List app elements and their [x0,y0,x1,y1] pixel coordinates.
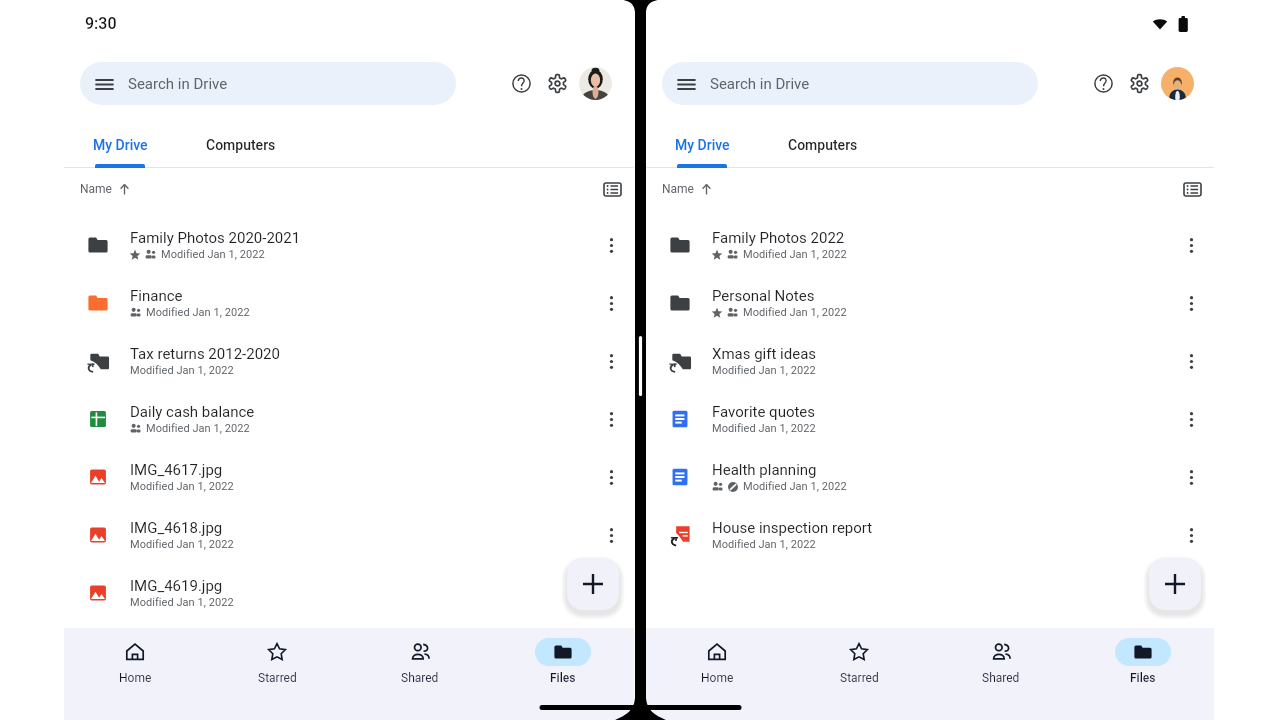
button[interactable]: Xmas gift ideas [646,332,1214,390]
staticText: Shared [401,671,439,685]
button[interactable]: IMG_4618.jpg [64,506,634,564]
button[interactable]: Shared [930,638,1072,710]
button[interactable]: Family Photos 2020-2021 [64,216,634,274]
staticText: Search in Drive [128,75,228,93]
button[interactable]: Files [491,638,634,710]
staticText: Daily cash balance [130,403,255,421]
button[interactable]: Create new [1149,558,1201,610]
staticText: House inspection report [712,519,873,537]
button[interactable]: House inspection report [646,506,1214,564]
button[interactable]: More options [1173,401,1209,437]
staticText: Modified Jan 1, 2022 [743,248,847,261]
staticText: Xmas gift ideas [712,345,817,363]
staticText: Home [119,671,152,685]
staticText: Modified Jan 1, 2022 [161,248,265,261]
staticText: Computers [788,137,858,153]
button[interactable]: More options [593,517,629,553]
button[interactable]: Settings [537,63,577,103]
staticText: My Drive [675,137,730,153]
button[interactable]: Help [1083,63,1123,103]
button[interactable]: Name [80,182,131,196]
staticText: My Drive [93,137,148,153]
button[interactable]: My Drive [667,118,737,172]
staticText: IMG_4617.jpg [130,461,223,479]
button[interactable]: Personal Notes [646,274,1214,332]
button[interactable]: More options [1173,517,1209,553]
staticText: Health planning [712,461,817,479]
staticText: Modified Jan 1, 2022 [146,422,250,435]
staticText: Modified Jan 1, 2022 [743,480,847,493]
button[interactable]: IMG_4619.jpg [64,564,634,622]
button[interactable]: Starred [788,638,930,710]
button[interactable]: My Drive [85,118,155,172]
staticText: Tax returns 2012-2020 [130,345,280,363]
button[interactable]: Open navigation drawer [80,62,456,105]
button[interactable]: Computers [780,118,866,172]
staticText: Modified Jan 1, 2022 [130,596,234,609]
button[interactable]: Health planning [646,448,1214,506]
staticText: Personal Notes [712,287,815,305]
staticText: Favorite quotes [712,403,816,421]
button[interactable]: Create new [567,558,619,610]
button[interactable]: Account [571,59,619,107]
staticText: Modified Jan 1, 2022 [130,538,234,551]
button[interactable]: More options [593,575,629,611]
staticText: Starred [258,671,297,685]
button[interactable]: Starred [206,638,348,710]
button[interactable]: More options [593,227,629,263]
button[interactable]: Shared [348,638,491,710]
button[interactable]: More options [593,459,629,495]
button[interactable]: Files [1072,638,1214,710]
staticText: Home [701,671,734,685]
staticText: Search in Drive [710,75,810,93]
staticText: Name [662,182,694,196]
button[interactable]: IMG_4617.jpg [64,448,634,506]
staticText: Modified Jan 1, 2022 [130,480,234,493]
button[interactable]: Family Photos 2022 [646,216,1214,274]
staticText: Modified Jan 1, 2022 [146,306,250,319]
button[interactable]: Favorite quotes [646,390,1214,448]
button[interactable]: More options [593,343,629,379]
button[interactable]: More options [1173,227,1209,263]
staticText: Modified Jan 1, 2022 [712,538,816,551]
staticText: Starred [840,671,879,685]
button[interactable]: More options [593,285,629,321]
button[interactable]: Tax returns 2012-2020 [64,332,634,390]
staticText: Family Photos 2020-2021 [130,229,301,247]
staticText: Shared [982,671,1020,685]
staticText: Name [80,182,112,196]
button[interactable]: Daily cash balance [64,390,634,448]
button[interactable]: Account [1153,59,1201,107]
staticText: Finance [130,287,183,305]
button[interactable]: More options [1173,285,1209,321]
button[interactable]: Open navigation drawer [87,67,121,101]
button[interactable]: Finance [64,274,634,332]
button[interactable]: Name [662,182,713,196]
button[interactable]: Help [501,63,541,103]
button[interactable]: Settings [1119,63,1159,103]
staticText: Modified Jan 1, 2022 [712,422,816,435]
button[interactable]: Home [646,638,788,710]
staticText: Modified Jan 1, 2022 [712,364,816,377]
staticText: 9:30 [85,14,117,33]
button[interactable]: More options [1173,459,1209,495]
button[interactable]: Switch to grid view [1176,173,1208,205]
staticText: Modified Jan 1, 2022 [130,364,234,377]
staticText: Family Photos 2022 [712,229,845,247]
button[interactable]: Computers [198,118,284,172]
staticText: IMG_4619.jpg [130,577,223,595]
staticText: Files [550,671,576,685]
staticText: Files [1130,671,1156,685]
staticText: IMG_4618.jpg [130,519,223,537]
button[interactable]: Open navigation drawer [669,67,703,101]
button[interactable]: More options [593,401,629,437]
button[interactable]: More options [1173,343,1209,379]
button[interactable]: Open navigation drawer [662,62,1038,105]
staticText: Computers [206,137,276,153]
button[interactable]: Switch to grid view [596,173,628,205]
staticText: Modified Jan 1, 2022 [743,306,847,319]
button[interactable]: Home [64,638,206,710]
